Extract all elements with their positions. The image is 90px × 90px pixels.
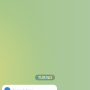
staticText: Search here — [13, 87, 34, 90]
staticText: TURNO — [38, 75, 52, 80]
button[interactable]: Search here — [2, 85, 57, 90]
